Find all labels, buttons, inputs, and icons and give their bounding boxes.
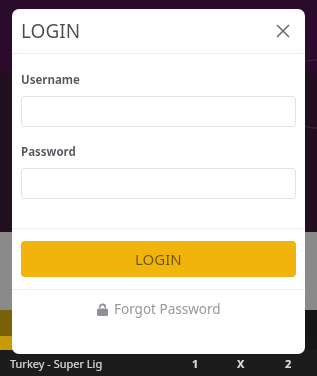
staticText: Username	[21, 72, 80, 88]
button[interactable]: SOCCER	[0, 336, 68, 352]
staticText: Forgot Password	[114, 300, 221, 318]
staticText: LOGIN	[135, 249, 182, 269]
staticText: 1	[192, 356, 199, 371]
button[interactable]: Forgot Password	[12, 290, 305, 328]
staticText: Turkey - Super Lig	[10, 356, 103, 371]
staticText: X	[237, 356, 245, 371]
button[interactable]: Close	[267, 15, 299, 47]
staticText: LOGIN	[21, 18, 81, 44]
button[interactable]: Turkey - Super Lig	[0, 350, 317, 376]
button[interactable]	[21, 96, 296, 127]
staticText: Password	[21, 144, 76, 160]
button[interactable]: LOGIN	[21, 241, 296, 277]
button[interactable]	[21, 168, 296, 199]
staticText: 2	[285, 356, 292, 371]
